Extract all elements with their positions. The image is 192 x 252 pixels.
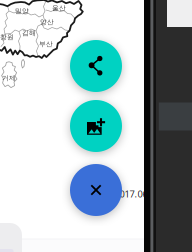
staticText: 부산	[39, 40, 53, 48]
staticText: 울산	[52, 4, 66, 12]
button[interactable]: Add photo	[70, 100, 122, 152]
staticText: 거제	[2, 74, 16, 82]
staticText: 밀양	[15, 7, 29, 15]
staticText: 양산	[40, 18, 54, 26]
button[interactable]: Share	[70, 40, 122, 92]
button[interactable]: Close	[70, 164, 122, 216]
staticText: 2017.06	[114, 188, 147, 200]
staticText: 창원	[0, 33, 14, 41]
staticText: 김해	[22, 29, 36, 37]
